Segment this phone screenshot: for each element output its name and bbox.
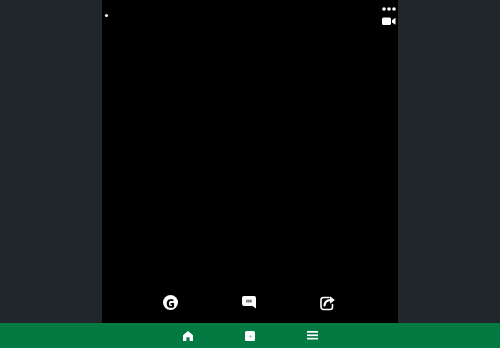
button[interactable] bbox=[219, 323, 281, 348]
button[interactable] bbox=[381, 2, 397, 16]
button[interactable] bbox=[281, 323, 343, 348]
button[interactable] bbox=[380, 14, 398, 28]
button[interactable] bbox=[317, 292, 338, 313]
button[interactable] bbox=[157, 323, 219, 348]
staticText: G bbox=[166, 295, 175, 310]
button[interactable] bbox=[238, 291, 259, 312]
button[interactable]: G bbox=[160, 292, 180, 312]
